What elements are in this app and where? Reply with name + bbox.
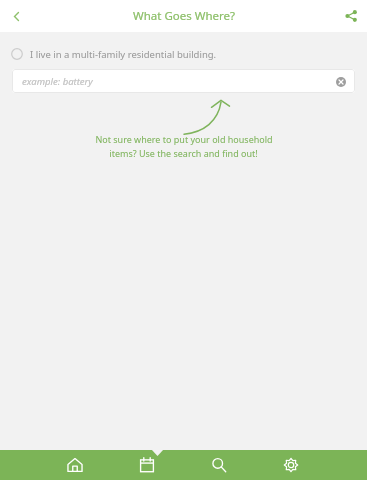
button[interactable]: example: battery <box>12 69 355 93</box>
button[interactable]: Settings <box>255 450 327 480</box>
button[interactable]: Search <box>183 450 255 480</box>
button[interactable]: Back <box>0 0 32 32</box>
button[interactable]: Home <box>39 450 111 480</box>
staticText: What Goes Where? <box>133 8 235 24</box>
staticText: Not sure where to put your old household <box>95 133 273 145</box>
staticText: example: battery <box>22 75 93 88</box>
staticText: items? Use the search and find out! <box>109 147 258 159</box>
button[interactable]: Share <box>335 0 367 32</box>
staticText: I live in a multi-family residential bui… <box>30 48 217 61</box>
button[interactable]: Calendar <box>111 450 183 480</box>
button[interactable]: Clear search <box>333 74 348 89</box>
button[interactable]: I live in a multi-family residential bui… <box>0 43 367 65</box>
